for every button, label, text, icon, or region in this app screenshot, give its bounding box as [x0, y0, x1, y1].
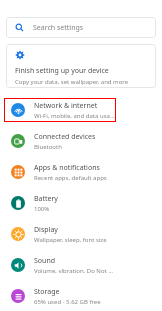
button[interactable]: Finish setting up your device — [6, 44, 156, 88]
staticText: Wallpaper, sleep, font size — [34, 236, 107, 244]
staticText: Copy your data, set wallpaper, and more — [15, 78, 129, 86]
staticText: Network & internet — [34, 101, 98, 111]
staticText: Recent apps, default apps — [34, 174, 107, 182]
button[interactable]: Search settings — [6, 17, 156, 38]
button[interactable]: Battery — [4, 191, 116, 215]
staticText: Apps & notifications — [34, 163, 100, 173]
staticText: Wi-Fi, mobile, and data usage — [34, 112, 116, 120]
staticText: Display — [34, 225, 58, 235]
button[interactable]: Sound — [4, 253, 116, 277]
button[interactable]: Network & internet — [4, 98, 116, 122]
button[interactable]: Display — [4, 222, 116, 246]
staticText: Bluetooth — [34, 143, 62, 151]
staticText: Search settings — [33, 23, 84, 33]
staticText: 100% — [34, 205, 50, 213]
staticText: 65% used - 5.62 GB free — [34, 298, 101, 306]
staticText: Finish setting up your device — [15, 66, 109, 76]
staticText: Storage — [34, 287, 60, 297]
staticText: Volume, vibration, Do Not Disturb — [34, 267, 116, 275]
button[interactable]: Storage — [4, 284, 116, 308]
staticText: Battery — [34, 194, 58, 204]
staticText: Connected devices — [34, 132, 96, 142]
button[interactable]: Connected devices — [4, 129, 116, 153]
button[interactable]: Apps & notifications — [4, 160, 116, 184]
staticText: Sound — [34, 256, 56, 266]
